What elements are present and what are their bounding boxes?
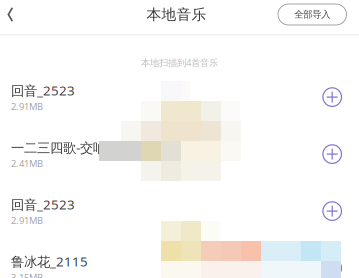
staticText: 鲁冰花_2115 bbox=[11, 253, 88, 270]
button[interactable]: 回音_2523 bbox=[0, 69, 359, 126]
staticText: 回音_2523 bbox=[11, 82, 75, 99]
staticText: 2.91MB bbox=[11, 100, 43, 113]
button[interactable]: 回音_2523 bbox=[0, 183, 359, 240]
staticText: 回音_2523 bbox=[11, 196, 75, 213]
staticText: 2.41MB bbox=[11, 157, 43, 170]
button[interactable]: 鲁冰花_2115 bbox=[0, 240, 359, 278]
staticText: 本地扫描到4首音乐 bbox=[141, 56, 218, 69]
staticText: 一二三四歌-交响乐版 bbox=[11, 139, 132, 156]
staticText: 本地音乐 bbox=[146, 5, 206, 23]
button[interactable]: 全部导入 bbox=[278, 4, 346, 25]
staticText: 3.15MB bbox=[11, 271, 43, 278]
button[interactable]: Back bbox=[0, 0, 25, 29]
staticText: 全部导入 bbox=[294, 9, 330, 20]
button[interactable]: 一二三四歌-交响乐版 bbox=[0, 126, 359, 183]
staticText: 2.91MB bbox=[11, 214, 43, 227]
